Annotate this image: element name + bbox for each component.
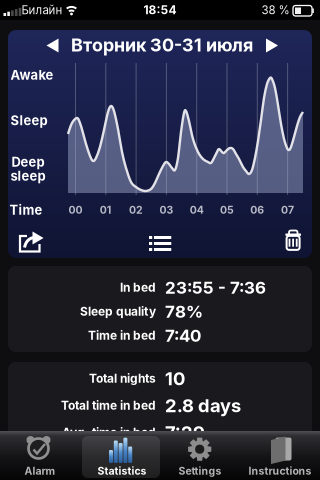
staticText: 00	[68, 204, 82, 216]
staticText: Sleep quality	[80, 304, 156, 319]
staticText: Deep	[11, 154, 44, 170]
staticText: 38 %	[261, 3, 289, 17]
staticText: Билайн	[21, 3, 62, 17]
staticText: 18:54	[143, 3, 176, 17]
staticText: 02	[129, 204, 143, 216]
staticText: Instructions	[248, 465, 311, 477]
staticText: Time	[9, 202, 42, 218]
button[interactable]: Share	[15, 228, 47, 256]
staticText: 05	[220, 204, 234, 216]
button[interactable]: Settings	[160, 431, 240, 480]
staticText: 7:40	[165, 325, 201, 346]
staticText: Time in bed	[88, 328, 156, 343]
staticText: In bed	[120, 280, 156, 295]
button[interactable]: Statistics	[80, 431, 160, 480]
staticText: Statistics	[97, 465, 146, 477]
button[interactable]: Alarm	[0, 431, 80, 480]
button[interactable]: Sleep notes	[147, 234, 173, 254]
staticText: 78%	[165, 301, 203, 322]
staticText: Settings	[178, 465, 221, 477]
button[interactable]: Previous day	[45, 37, 61, 53]
staticText: 10	[165, 367, 185, 390]
staticText: sleep	[10, 168, 45, 184]
staticText: 7:29	[165, 421, 205, 444]
staticText: 01	[100, 204, 112, 216]
staticText: Total nights	[89, 371, 156, 386]
staticText: 07	[281, 204, 294, 216]
staticText: 2.8 days	[165, 394, 241, 417]
staticText: Alarm	[24, 465, 55, 477]
button[interactable]: Instructions	[240, 431, 320, 480]
button[interactable]: Delete night	[283, 227, 303, 253]
staticText: 03	[159, 204, 173, 216]
staticText: Sleep	[10, 113, 47, 128]
staticText: Avg. time in bed	[62, 425, 156, 440]
button[interactable]: Next day	[263, 37, 279, 53]
staticText: Awake	[10, 67, 53, 83]
staticText: 04	[190, 204, 204, 216]
staticText: 06	[250, 204, 264, 216]
staticText: Вторник 30-31 июля	[71, 34, 253, 56]
staticText: Total time in bed	[61, 398, 156, 413]
staticText: 23:55 - 7:36	[165, 277, 266, 298]
